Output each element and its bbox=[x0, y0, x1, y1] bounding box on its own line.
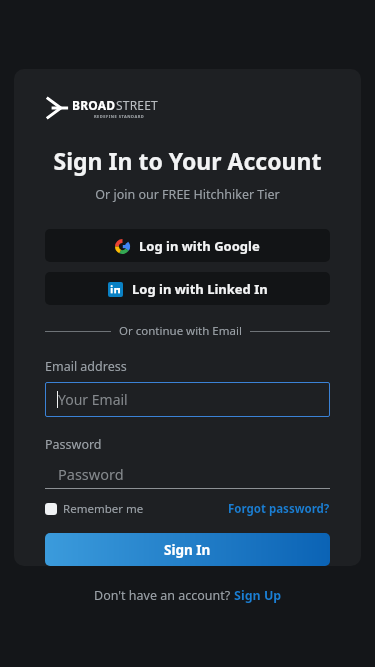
staticText: Log in with Google bbox=[139, 237, 260, 255]
button[interactable]: Your Email bbox=[45, 382, 330, 417]
staticText: Don't have an account? bbox=[94, 587, 234, 604]
button[interactable]: Sign Up bbox=[234, 587, 282, 604]
staticText: Password bbox=[45, 436, 102, 453]
staticText: Email address bbox=[45, 358, 127, 375]
button[interactable]: Password bbox=[45, 459, 330, 489]
staticText: Log in with Linked In bbox=[132, 280, 268, 298]
button[interactable]: Log in with Linked In bbox=[45, 272, 330, 305]
button[interactable]: Log in with Google bbox=[45, 229, 330, 262]
staticText: Your Email bbox=[58, 390, 128, 409]
staticText: BROAD bbox=[72, 97, 116, 113]
staticText: Remember me bbox=[63, 501, 144, 517]
staticText: Sign In to Your Account bbox=[45, 145, 330, 176]
staticText: Sign Up bbox=[234, 587, 282, 604]
button[interactable]: Forgot password? bbox=[228, 501, 330, 517]
button[interactable]: Remember me bbox=[45, 501, 144, 517]
staticText: STREET bbox=[116, 97, 158, 113]
staticText: Or join our FREE Hitchhiker Tier bbox=[45, 186, 330, 203]
button[interactable]: Sign In bbox=[45, 533, 330, 566]
staticText: Password bbox=[58, 464, 124, 484]
staticText: REDEFINE STANDARD bbox=[94, 114, 145, 119]
staticText: Sign In bbox=[164, 541, 211, 559]
staticText: Forgot password? bbox=[228, 501, 330, 517]
staticText: Or continue with Email bbox=[119, 323, 242, 339]
